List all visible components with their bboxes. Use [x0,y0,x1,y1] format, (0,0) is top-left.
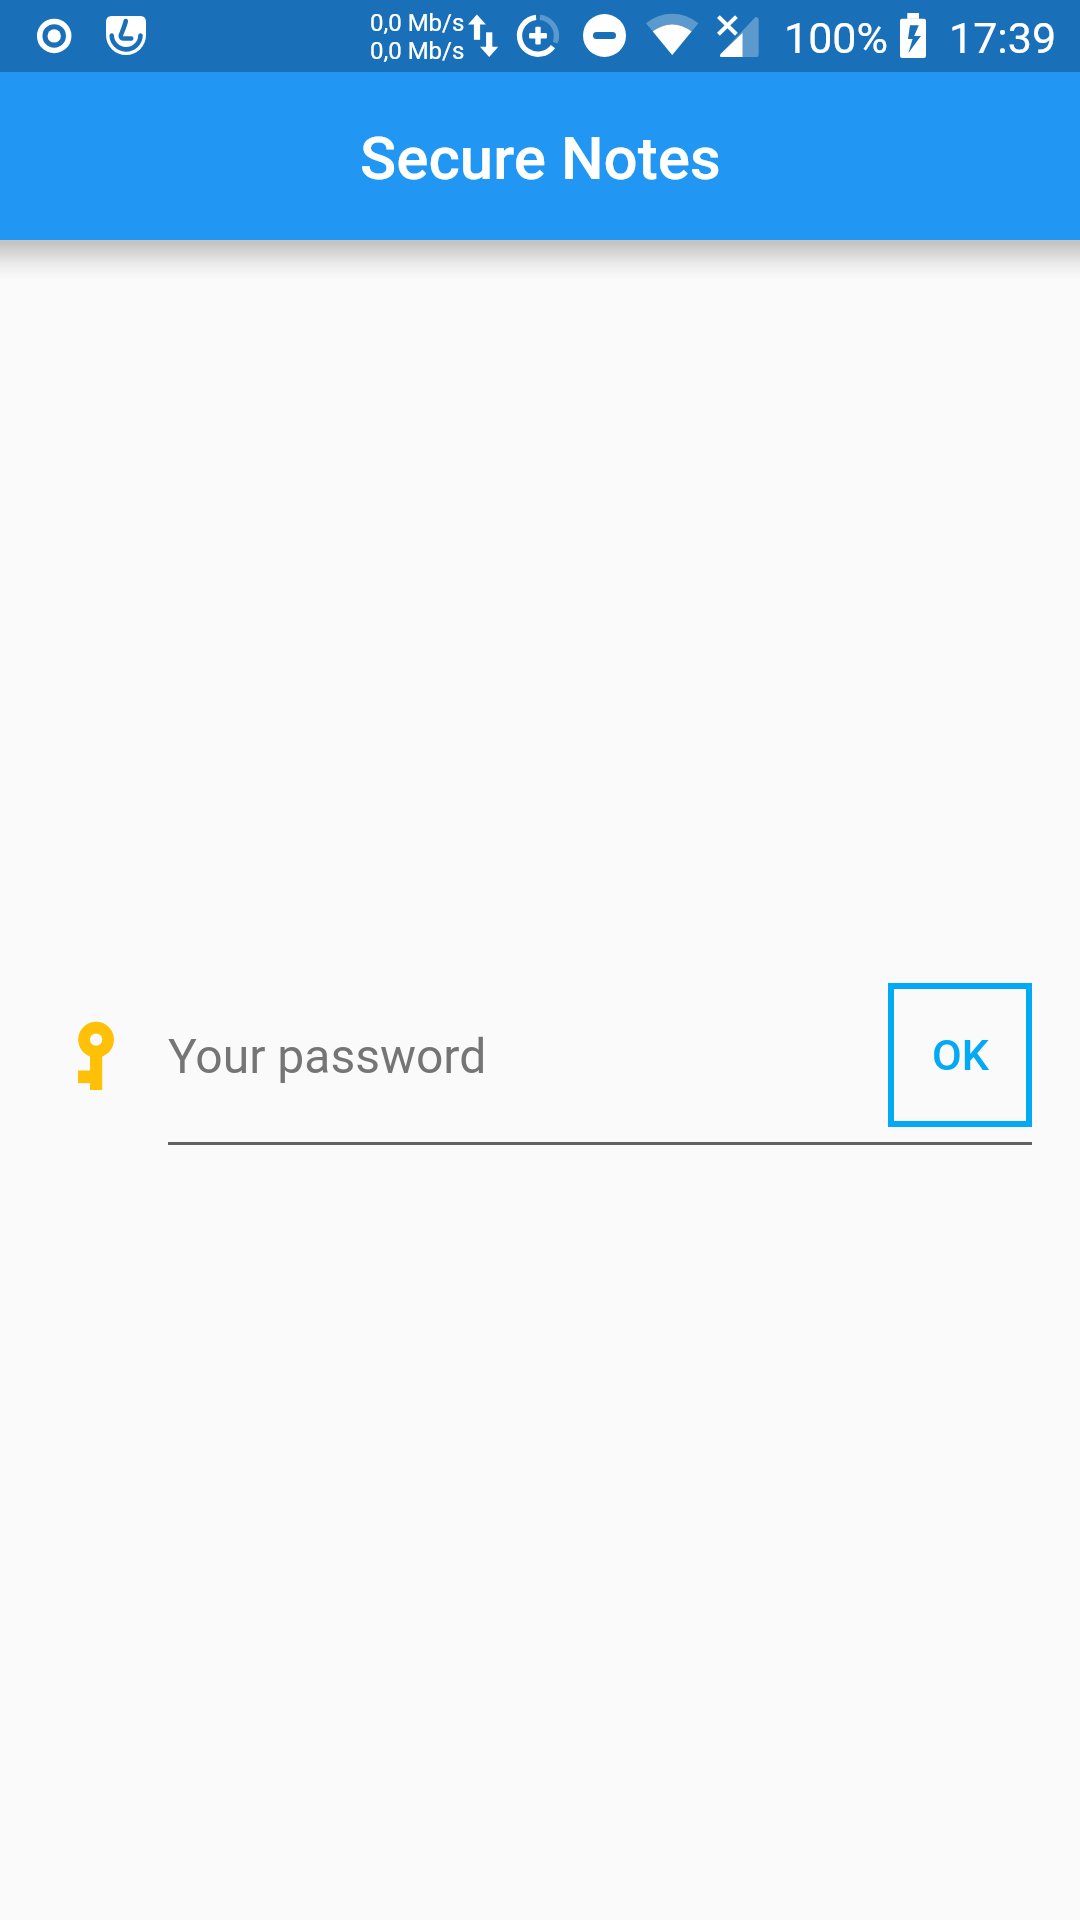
staticText: 17:39 [949,13,1057,63]
staticText: 0,0 Mb/s [370,9,465,37]
staticText: OK [932,1030,989,1080]
staticText: Secure Notes [360,123,721,193]
staticText: 100% [784,13,888,63]
button[interactable]: Your password [168,1009,1032,1145]
staticText: 0,0 Mb/s [370,37,465,65]
other: Password key [78,1022,115,1090]
button[interactable]: OK [888,983,1032,1127]
staticText: Your password [168,1028,487,1084]
